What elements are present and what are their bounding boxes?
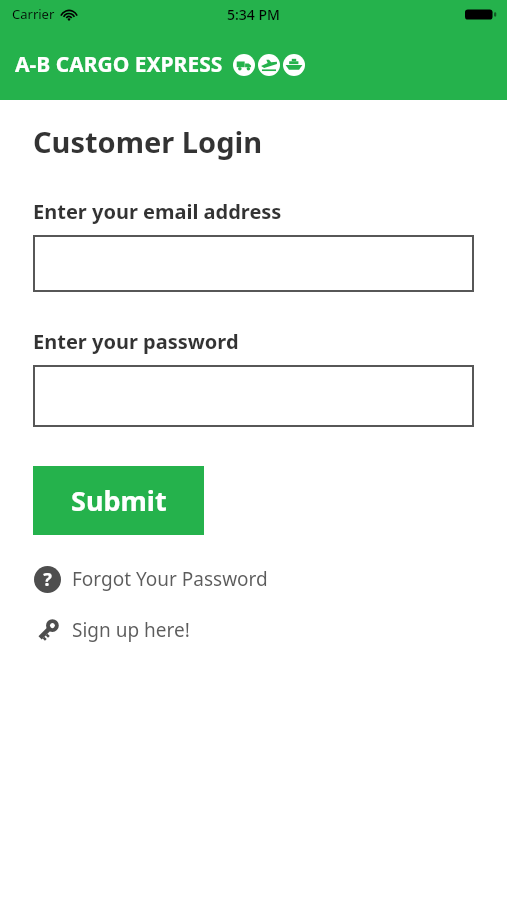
- staticText: Enter your password: [33, 328, 239, 355]
- button[interactable]: Text input: [33, 235, 474, 292]
- staticText: A-B CARGO EXPRESS: [15, 50, 223, 79]
- other: Air freight: [258, 54, 280, 76]
- button[interactable]: Text input: [33, 365, 474, 427]
- staticText: Sign up here!: [72, 617, 190, 643]
- staticText: Forgot Your Password: [72, 566, 268, 592]
- other: Forgot password: [30, 562, 64, 596]
- button[interactable]: Submit: [33, 466, 204, 535]
- button[interactable]: Sign up: [30, 611, 497, 649]
- staticText: Enter your email address: [33, 198, 282, 225]
- staticText: 5:34 PM: [227, 5, 280, 24]
- staticText: Submit: [71, 482, 167, 519]
- other: Sign up: [30, 613, 64, 647]
- staticText: Customer Login: [33, 122, 263, 161]
- other: Ground freight: [233, 54, 255, 76]
- other: Ocean freight: [283, 54, 305, 76]
- staticText: ?: [43, 567, 52, 592]
- button[interactable]: Forgot password: [30, 560, 497, 598]
- staticText: Carrier: [12, 5, 55, 23]
